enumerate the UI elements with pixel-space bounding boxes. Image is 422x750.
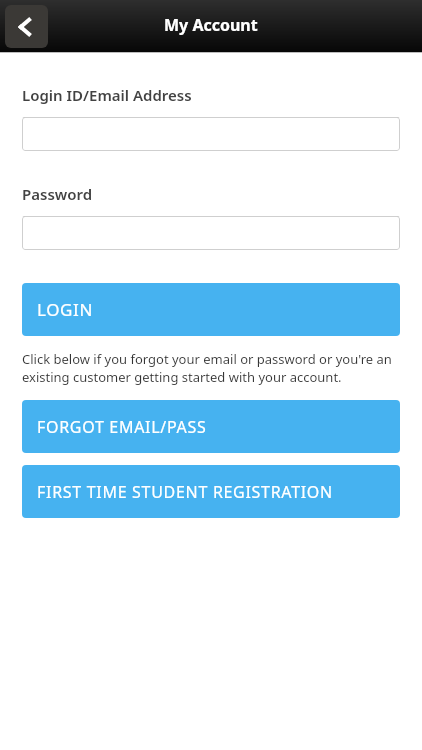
- staticText: FIRST TIME STUDENT REGISTRATION: [37, 481, 333, 503]
- staticText: Password: [22, 184, 93, 204]
- button[interactable]: [22, 216, 400, 250]
- staticText: Login ID/Email Address: [22, 85, 192, 105]
- button[interactable]: Back: [5, 5, 48, 48]
- button[interactable]: [22, 117, 400, 151]
- button[interactable]: LOGIN: [22, 283, 400, 336]
- staticText: My Account: [164, 14, 258, 36]
- button[interactable]: FIRST TIME STUDENT REGISTRATION: [22, 465, 400, 518]
- button[interactable]: FORGOT EMAIL/PASS: [22, 400, 400, 453]
- staticText: LOGIN: [37, 298, 93, 321]
- staticText: Click below if you forgot your email or …: [22, 350, 400, 386]
- staticText: FORGOT EMAIL/PASS: [37, 416, 207, 438]
